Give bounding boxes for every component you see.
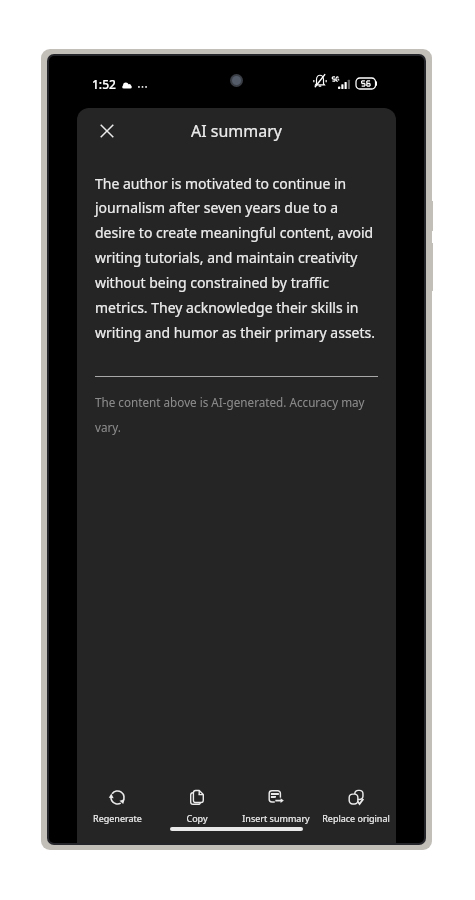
button[interactable]: Regenerate	[77, 781, 157, 824]
staticText: Insert summary	[242, 812, 310, 824]
staticText: Replace original	[322, 812, 390, 824]
staticText: Copy	[186, 812, 208, 824]
button[interactable]: Copy	[157, 781, 237, 824]
button[interactable]: Insert summary	[236, 781, 316, 824]
staticText: Regenerate	[93, 812, 142, 824]
staticText: The author is motivated to continue in j…	[95, 174, 378, 343]
staticText: AI summary	[191, 120, 283, 142]
button[interactable]: Replace original	[316, 781, 396, 824]
staticText: 1:52	[92, 76, 116, 92]
button[interactable]: Close	[87, 111, 127, 151]
staticText: The content above is AI-generated. Accur…	[95, 394, 378, 436]
